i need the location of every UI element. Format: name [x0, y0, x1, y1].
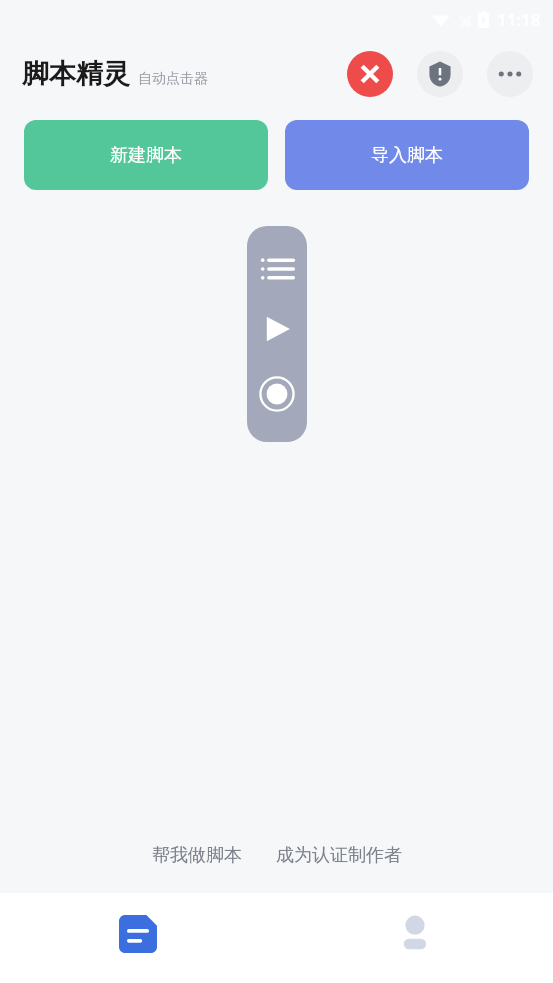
staticText: 脚本精灵 — [22, 57, 130, 91]
button[interactable]: Floating control panel — [247, 226, 307, 442]
staticText: 成为认证制作者 — [276, 844, 402, 867]
button[interactable]: 新建脚本 — [24, 120, 268, 190]
staticText: 11:18 — [497, 8, 541, 31]
button[interactable]: Close — [347, 51, 393, 97]
staticText: 帮我做脚本 — [152, 844, 242, 867]
button[interactable]: 成为认证制作者 — [272, 840, 406, 871]
button[interactable]: 帮我做脚本 — [148, 840, 246, 871]
button[interactable]: More options — [487, 51, 533, 97]
staticText: 自动点击器 — [138, 70, 208, 88]
button[interactable]: Security — [417, 51, 463, 97]
staticText: 新建脚本 — [110, 144, 182, 167]
staticText: 导入脚本 — [371, 144, 443, 167]
button[interactable]: Scripts — [0, 893, 276, 983]
button[interactable]: 导入脚本 — [285, 120, 529, 190]
button[interactable]: Profile — [276, 893, 553, 983]
